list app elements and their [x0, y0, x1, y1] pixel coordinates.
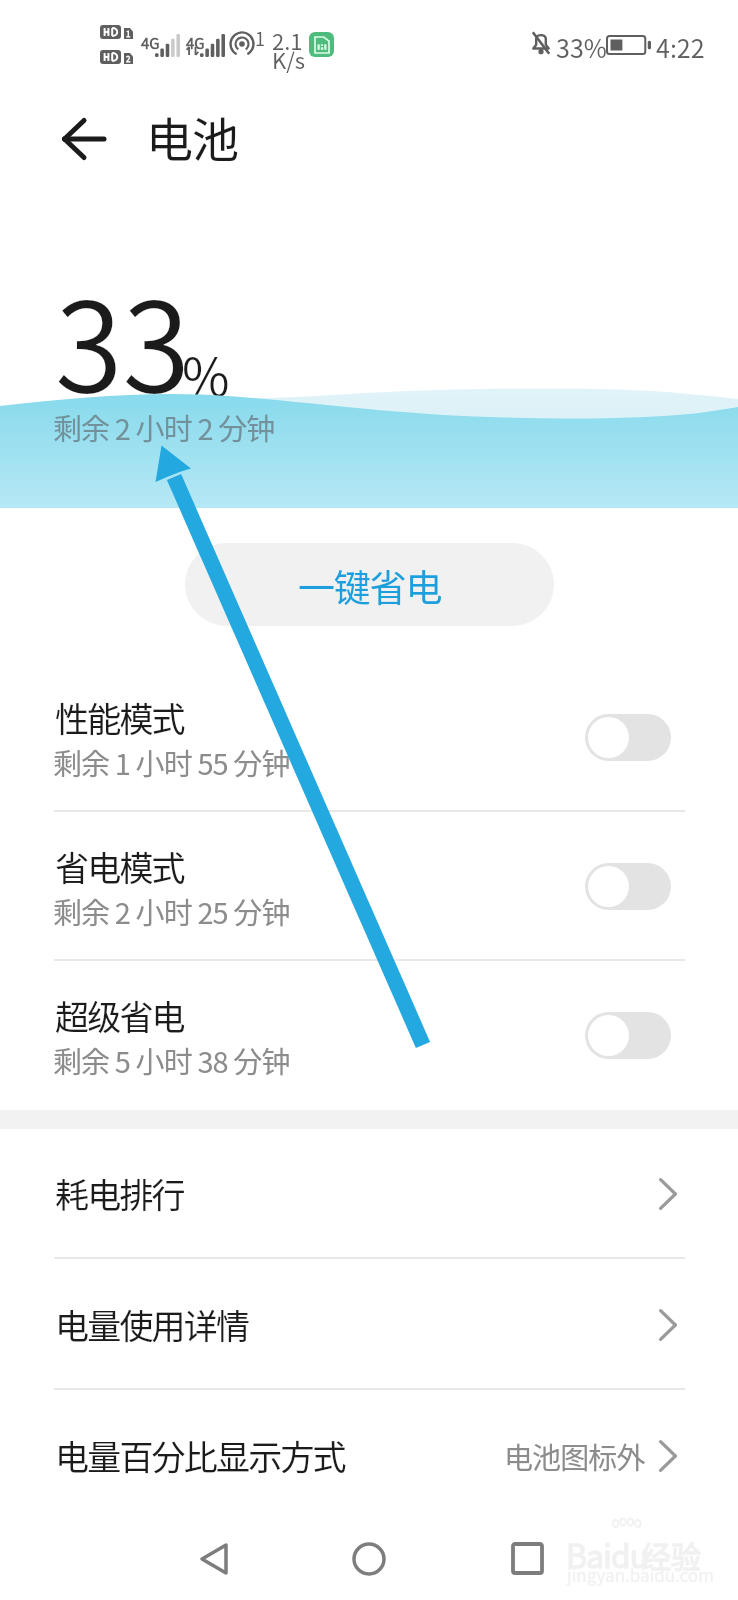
- button[interactable]: 超级省电: [0, 961, 738, 1110]
- staticText: jingyan.baidu.com: [567, 1562, 714, 1587]
- staticText: 耗电排行: [55, 1169, 184, 1218]
- staticText: 电池: [146, 102, 238, 170]
- button[interactable]: 省电模式: [0, 812, 738, 961]
- staticText: 剩余 5 小时 38 分钟: [53, 1039, 290, 1081]
- staticText: 电池图标外: [504, 1435, 645, 1477]
- staticText: Baidu: [566, 1531, 649, 1577]
- button[interactable]: Home: [334, 1524, 404, 1594]
- staticText: 性能模式: [55, 693, 184, 742]
- staticText: 经验: [641, 1533, 701, 1576]
- button[interactable]: Recents: [492, 1523, 562, 1593]
- staticText: 剩余 1 小时 55 分钟: [53, 741, 290, 783]
- staticText: %: [182, 336, 230, 411]
- staticText: 剩余 2 小时 25 分钟: [53, 890, 290, 932]
- staticText: 1: [126, 28, 131, 39]
- staticText: 4G: [141, 32, 160, 54]
- staticText: 33: [55, 249, 191, 427]
- staticText: 1: [255, 25, 265, 51]
- staticText: 电量使用详情: [55, 1300, 249, 1349]
- staticText: 4:22: [656, 29, 705, 65]
- staticText: 超级省电: [55, 991, 184, 1040]
- staticText: 剩余 2 小时 2 分钟: [53, 406, 275, 448]
- staticText: 省电模式: [55, 842, 184, 891]
- staticText: 2: [126, 53, 131, 64]
- staticText: 电量百分比显示方式: [55, 1431, 345, 1480]
- staticText: 一键省电: [298, 559, 442, 613]
- button[interactable]: 性能模式: [0, 663, 738, 812]
- button[interactable]: 电量使用详情: [0, 1259, 738, 1390]
- button[interactable]: Back: [44, 99, 124, 179]
- button[interactable]: 电量百分比显示方式: [0, 1390, 738, 1521]
- staticText: 33%: [556, 29, 607, 65]
- staticText: K/s: [272, 43, 306, 75]
- staticText: 4G: [186, 32, 205, 54]
- staticText: 2.1: [272, 24, 303, 56]
- button[interactable]: Back: [179, 1524, 249, 1594]
- button[interactable]: 一键省电: [185, 543, 554, 626]
- button[interactable]: 耗电排行: [0, 1128, 738, 1259]
